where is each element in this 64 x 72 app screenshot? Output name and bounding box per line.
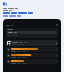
button[interactable]: Search — [6, 28, 58, 38]
button[interactable] — [6, 40, 58, 46]
button[interactable]: App logo — [3, 2, 8, 6]
button[interactable]: Search — [7, 31, 57, 34]
button[interactable]: More options — [6, 53, 58, 58]
button[interactable]: More options — [6, 59, 58, 64]
button[interactable]: More options — [6, 47, 58, 52]
button[interactable]: Menu — [6, 25, 14, 26]
